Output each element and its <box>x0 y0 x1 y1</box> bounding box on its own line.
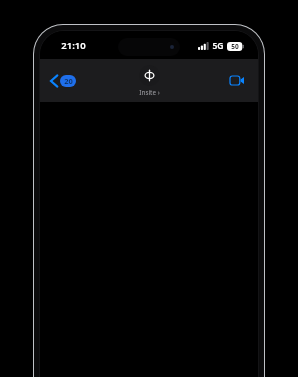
staticText: 50 <box>231 42 239 51</box>
staticText: Insite › <box>139 88 160 96</box>
button[interactable]: Start video call <box>226 72 248 89</box>
button[interactable]: Insite › <box>133 64 166 97</box>
button[interactable]: Back <box>47 71 79 91</box>
staticText: 5G <box>212 40 224 52</box>
staticText: 21:10 <box>61 39 86 52</box>
other: Back <box>50 74 58 88</box>
staticText: 20 <box>64 76 73 86</box>
